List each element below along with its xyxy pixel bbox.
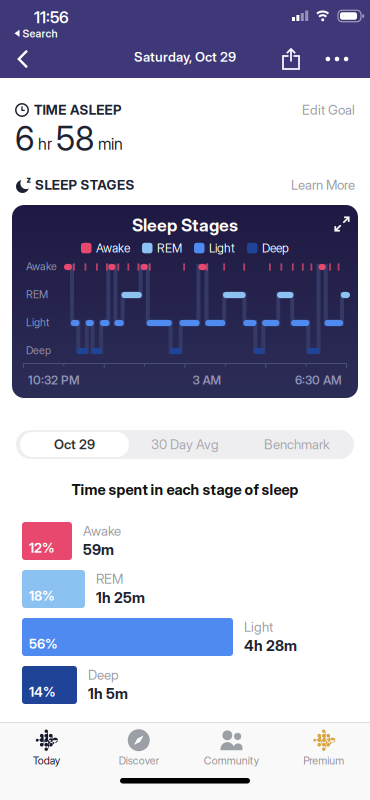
staticText: Light [244, 619, 273, 635]
staticText: 4h 28m [244, 637, 297, 654]
staticText: Edit Goal [302, 102, 355, 118]
staticText: Deep [88, 667, 119, 683]
staticText: SLEEP STAGES [35, 177, 134, 193]
button[interactable]: Discover [92, 725, 185, 771]
button[interactable]: Today [0, 725, 92, 771]
staticText: Time spent in each stage of sleep [71, 481, 298, 498]
staticText: Community [204, 754, 259, 767]
staticText: 59m [83, 541, 114, 558]
staticText: 56% [29, 636, 58, 652]
staticText: min [98, 134, 123, 153]
staticText: 6 [15, 119, 34, 158]
staticText: Awake [83, 523, 121, 539]
staticText: z [26, 175, 30, 184]
staticText: hr [38, 134, 52, 153]
button[interactable]: Back [8, 44, 38, 74]
staticText: 1h 25m [96, 589, 145, 606]
staticText: 14% [29, 684, 56, 700]
staticText: Premium [303, 754, 344, 767]
staticText: Awake [26, 260, 57, 273]
staticText: Benchmark [264, 437, 330, 452]
staticText: 6:30 AM [295, 373, 342, 387]
staticText: Light [209, 241, 235, 255]
staticText: 3 AM [192, 373, 221, 387]
staticText: Oct 29 [54, 437, 95, 452]
button[interactable]: Learn More [291, 177, 355, 193]
button[interactable]: Expand chart [330, 212, 354, 236]
button[interactable]: Community [185, 725, 277, 771]
button[interactable]: More options [320, 44, 354, 74]
staticText: 18% [29, 588, 55, 604]
staticText: REM [96, 571, 123, 587]
staticText: 11:56 [34, 8, 69, 27]
button[interactable]: Share [276, 45, 306, 73]
staticText: TIME ASLEEP [34, 102, 121, 118]
button[interactable]: Back to Search [7, 27, 57, 40]
staticText: Search [22, 27, 57, 40]
staticText: Today [33, 754, 60, 767]
staticText: Awake [96, 241, 130, 255]
staticText: Learn More [291, 177, 355, 193]
button[interactable]: Edit Goal [302, 102, 355, 118]
staticText: Discover [119, 754, 159, 767]
staticText: Deep [26, 344, 51, 357]
staticText: Deep [262, 241, 289, 255]
staticText: 1h 5m [88, 685, 128, 702]
button[interactable]: Oct 29 [20, 432, 129, 457]
staticText: 10:32 PM [28, 373, 80, 387]
button[interactable]: Benchmark [241, 430, 353, 459]
staticText: Saturday, Oct 29 [134, 49, 236, 65]
staticText: 58 [56, 119, 94, 158]
button[interactable]: 30 Day Avg [129, 430, 241, 459]
staticText: 12% [29, 540, 55, 556]
staticText: REM [157, 241, 182, 255]
staticText: REM [26, 288, 48, 301]
staticText: Light [26, 316, 49, 329]
button[interactable]: Premium [277, 725, 370, 771]
staticText: 30 Day Avg [151, 437, 219, 452]
staticText: Sleep Stages [132, 215, 238, 235]
